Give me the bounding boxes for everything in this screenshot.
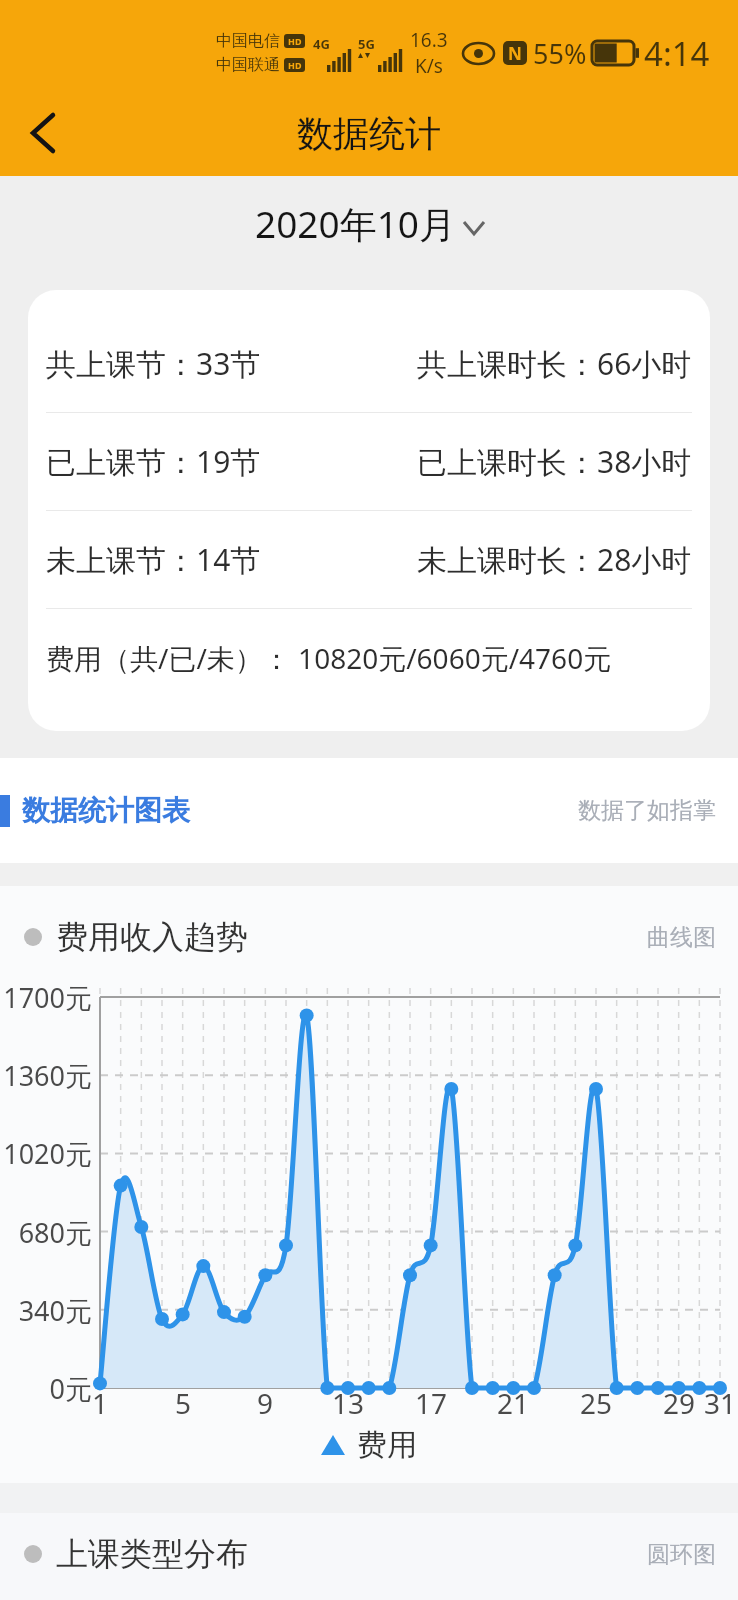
staticText: 未上课时长：28小时 xyxy=(417,539,692,580)
staticText: HD xyxy=(288,59,302,71)
staticText: 680元 xyxy=(18,1214,92,1251)
staticText: 中国联通 xyxy=(216,55,280,75)
staticText: 1020元 xyxy=(3,1135,92,1172)
staticText: 上课类型分布 xyxy=(56,1534,248,1574)
staticText: 340元 xyxy=(18,1292,92,1329)
staticText: 13 xyxy=(332,1384,365,1420)
staticText: 2020年10月 xyxy=(255,198,456,249)
staticText: 费用 xyxy=(357,1426,417,1464)
staticText: 4G xyxy=(313,35,330,53)
staticText: 1360元 xyxy=(3,1057,92,1094)
staticText: 1 xyxy=(92,1384,109,1420)
staticText: 4:14 xyxy=(644,31,710,76)
button[interactable] xyxy=(12,102,74,164)
staticText: 0元 xyxy=(49,1370,92,1407)
staticText: 数据统计图表 xyxy=(22,793,190,828)
staticText: HD xyxy=(288,35,302,47)
button[interactable]: 曲线图 xyxy=(647,923,716,952)
staticText: 21 xyxy=(497,1384,530,1420)
staticText: 1700元 xyxy=(3,979,92,1016)
staticText: 17 xyxy=(415,1384,448,1420)
button[interactable]: 圆环图 xyxy=(647,1540,716,1569)
staticText: 55% xyxy=(533,35,587,72)
staticText: 费用（共/已/未）： 10820元/6060元/4760元 xyxy=(46,639,612,677)
staticText: 9 xyxy=(257,1384,274,1420)
staticText: 费用收入趋势 xyxy=(56,917,248,957)
staticText: 数据了如指掌 xyxy=(578,796,716,825)
staticText: 5 xyxy=(175,1384,192,1420)
staticText: 已上课时长：38小时 xyxy=(417,441,692,482)
staticText: K/s xyxy=(415,53,443,79)
staticText: 未上课节：14节 xyxy=(46,539,261,580)
staticText: 31 xyxy=(704,1384,737,1420)
staticText: 共上课节：33节 xyxy=(46,343,261,384)
staticText: 中国电信 xyxy=(216,31,280,51)
button[interactable]: 2020年10月 xyxy=(0,176,738,270)
button[interactable]: 费用 xyxy=(0,1420,738,1470)
staticText: N xyxy=(508,42,522,65)
staticText: 16.3 xyxy=(410,27,448,53)
staticText: 5G xyxy=(358,35,375,53)
staticText: 共上课时长：66小时 xyxy=(417,343,692,384)
staticText: 29 xyxy=(663,1384,696,1420)
staticText: 数据统计 xyxy=(297,111,441,156)
staticText: 25 xyxy=(580,1384,613,1420)
staticText: 已上课节：19节 xyxy=(46,441,261,482)
